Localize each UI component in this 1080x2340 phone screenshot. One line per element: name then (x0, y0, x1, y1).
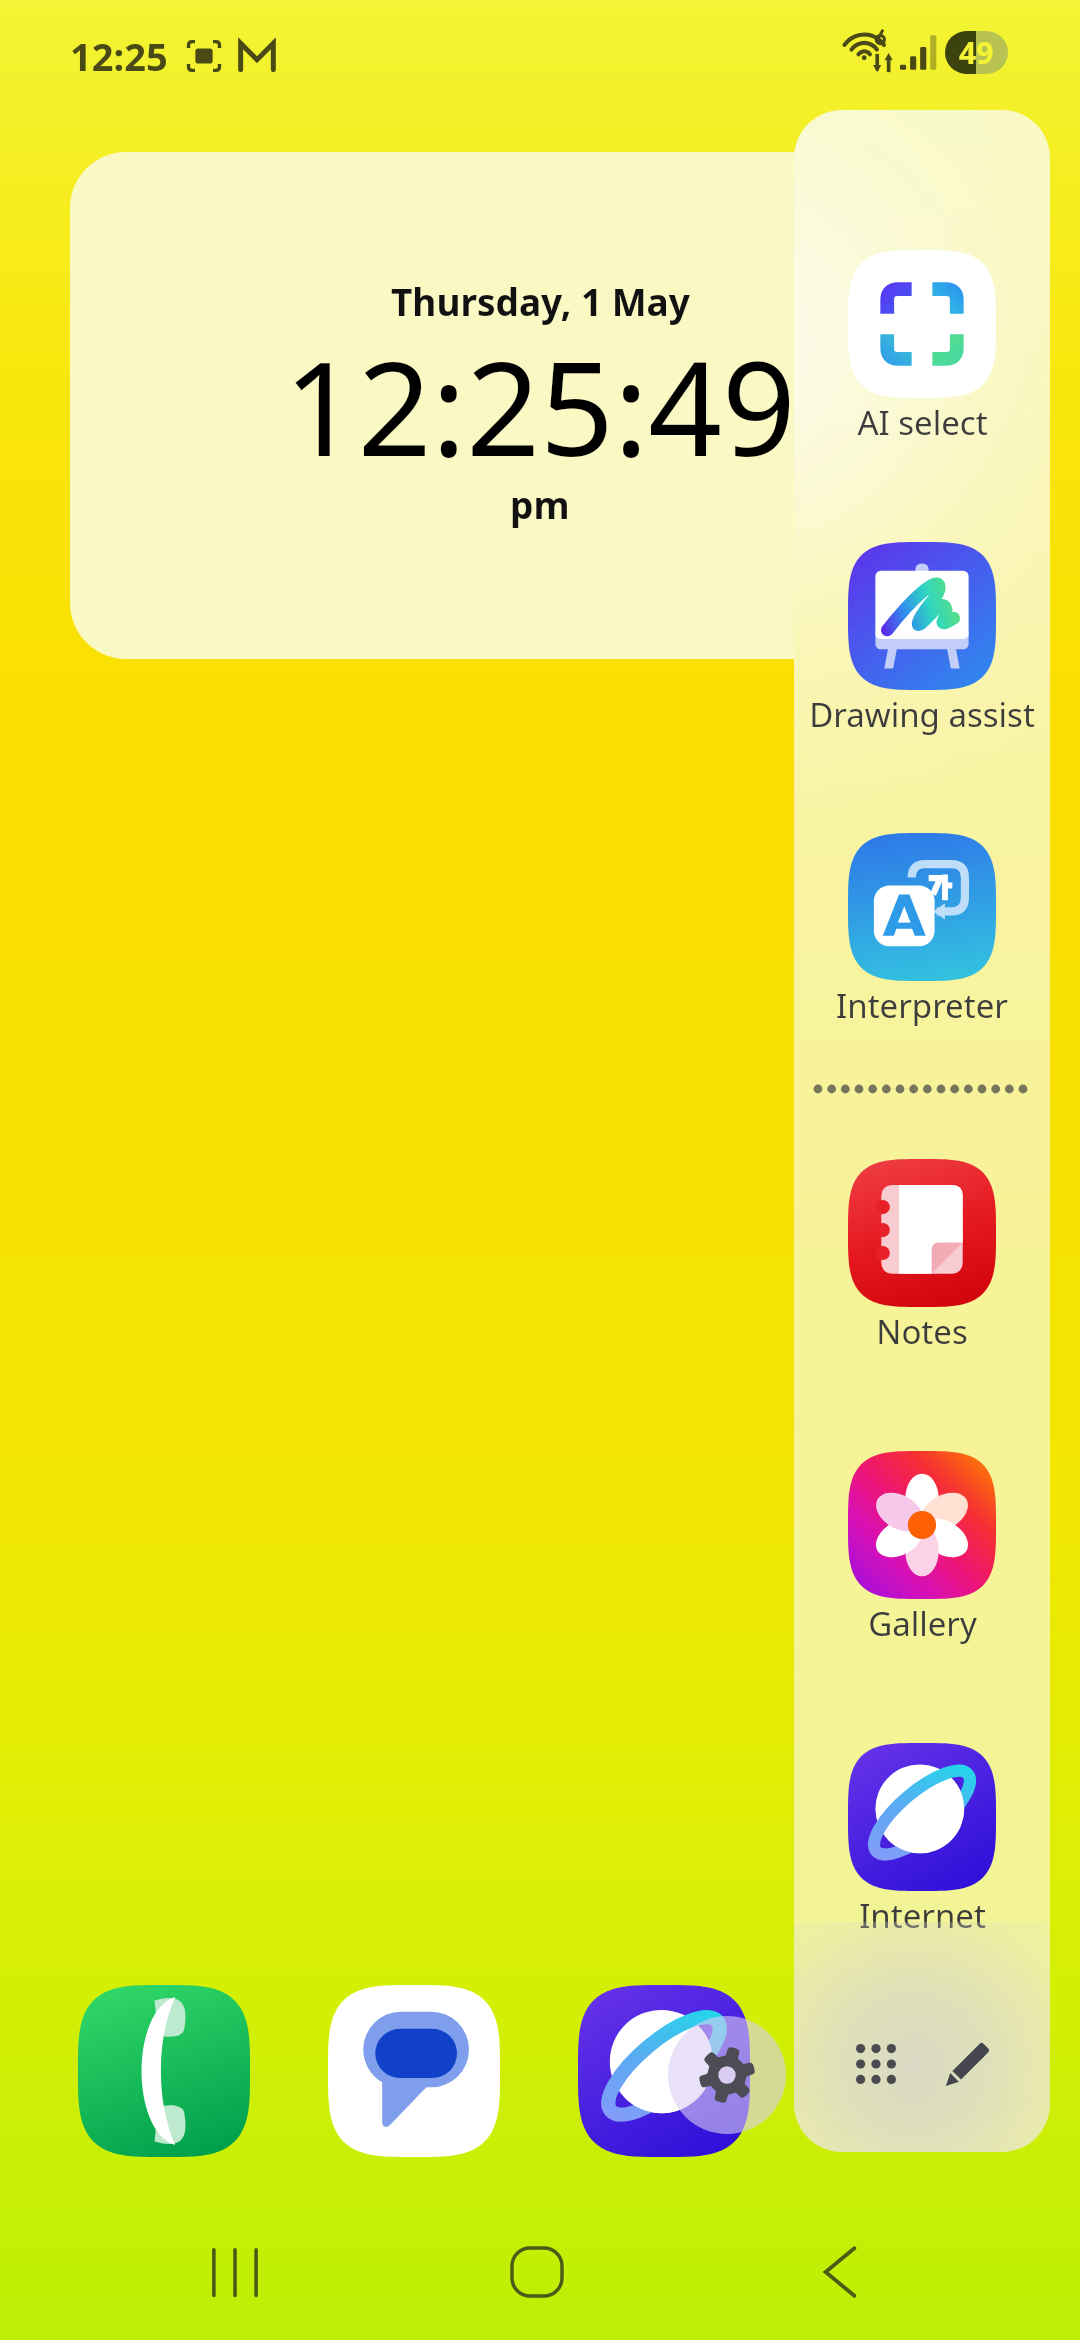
staticText: Thursday, 1 May (391, 276, 690, 326)
button[interactable]: Messages (328, 1985, 500, 2157)
button[interactable]: Phone (78, 1985, 250, 2157)
button[interactable]: Back (780, 2212, 900, 2332)
staticText: Interpreter (836, 983, 1008, 1028)
staticText: 49 (959, 32, 994, 73)
button[interactable]: Recents (175, 2212, 295, 2332)
button[interactable]: Thursday, 1 May (70, 152, 1010, 659)
button[interactable]: Gallery (794, 1451, 1050, 1646)
button[interactable]: Edit (920, 2016, 1016, 2112)
button[interactable]: Interpreter (794, 833, 1050, 1028)
button[interactable]: Internet (794, 1743, 1050, 1938)
staticText: Drawing assist (809, 692, 1035, 737)
staticText: 12:25:49 (284, 318, 796, 494)
button[interactable]: Settings (668, 2016, 786, 2134)
button[interactable]: AI select (794, 250, 1050, 445)
staticText: Notes (876, 1309, 968, 1354)
button[interactable]: Internet (578, 1985, 750, 2157)
staticText: Gallery (868, 1601, 977, 1646)
staticText: AI select (857, 400, 988, 445)
staticText: 12:25 (70, 30, 168, 82)
staticText: pm (510, 479, 570, 529)
button[interactable]: All apps (828, 2016, 924, 2112)
button[interactable]: Home (477, 2212, 597, 2332)
button[interactable]: Drawing assist (794, 542, 1050, 737)
button[interactable]: Notes (794, 1159, 1050, 1354)
staticText: Internet (859, 1893, 986, 1938)
